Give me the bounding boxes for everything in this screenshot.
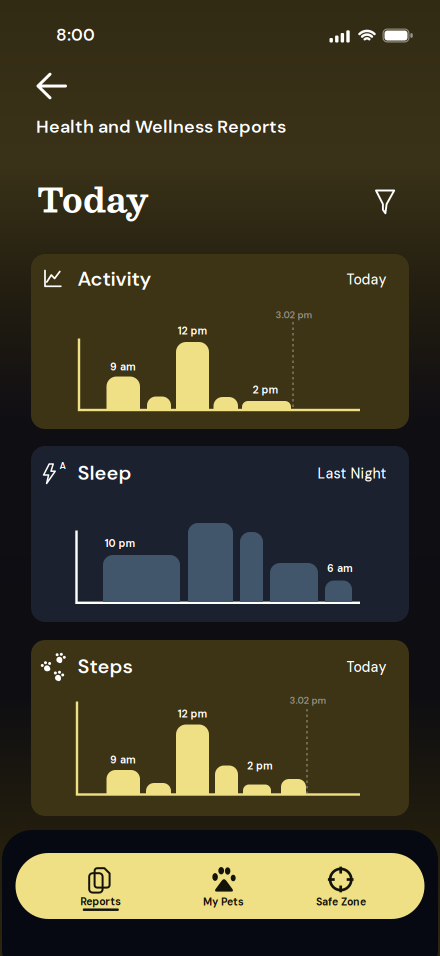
staticText: Health and Wellness Reports: [36, 115, 286, 138]
staticText: 9 am: [110, 753, 136, 767]
staticText: Last Night: [317, 464, 386, 483]
button[interactable]: Back: [29, 64, 77, 108]
staticText: Today: [346, 658, 386, 676]
button[interactable]: Reports: [39, 853, 161, 919]
staticText: 2 pm: [252, 383, 278, 397]
staticText: 12 pm: [177, 324, 207, 338]
staticText: Activity: [77, 266, 151, 292]
staticText: 8:00: [56, 24, 95, 46]
staticText: A: [59, 460, 65, 472]
staticText: Steps: [77, 653, 132, 679]
staticText: 9 am: [110, 360, 136, 374]
staticText: Reports: [80, 895, 121, 909]
staticText: 10 pm: [104, 537, 135, 550]
staticText: Sleep: [77, 460, 131, 486]
staticText: My Pets: [203, 895, 244, 909]
staticText: 2 pm: [247, 759, 273, 773]
button[interactable]: Safe Zone: [279, 853, 401, 919]
staticText: 6 am: [327, 562, 353, 575]
staticText: Today: [346, 270, 386, 289]
button[interactable]: Filter: [363, 180, 407, 224]
staticText: 3.02 pm: [275, 309, 312, 321]
staticText: 3.02 pm: [289, 694, 326, 707]
staticText: Today: [37, 170, 149, 227]
staticText: 12 pm: [177, 707, 207, 721]
staticText: Safe Zone: [316, 895, 366, 909]
button[interactable]: My Pets: [161, 853, 283, 919]
